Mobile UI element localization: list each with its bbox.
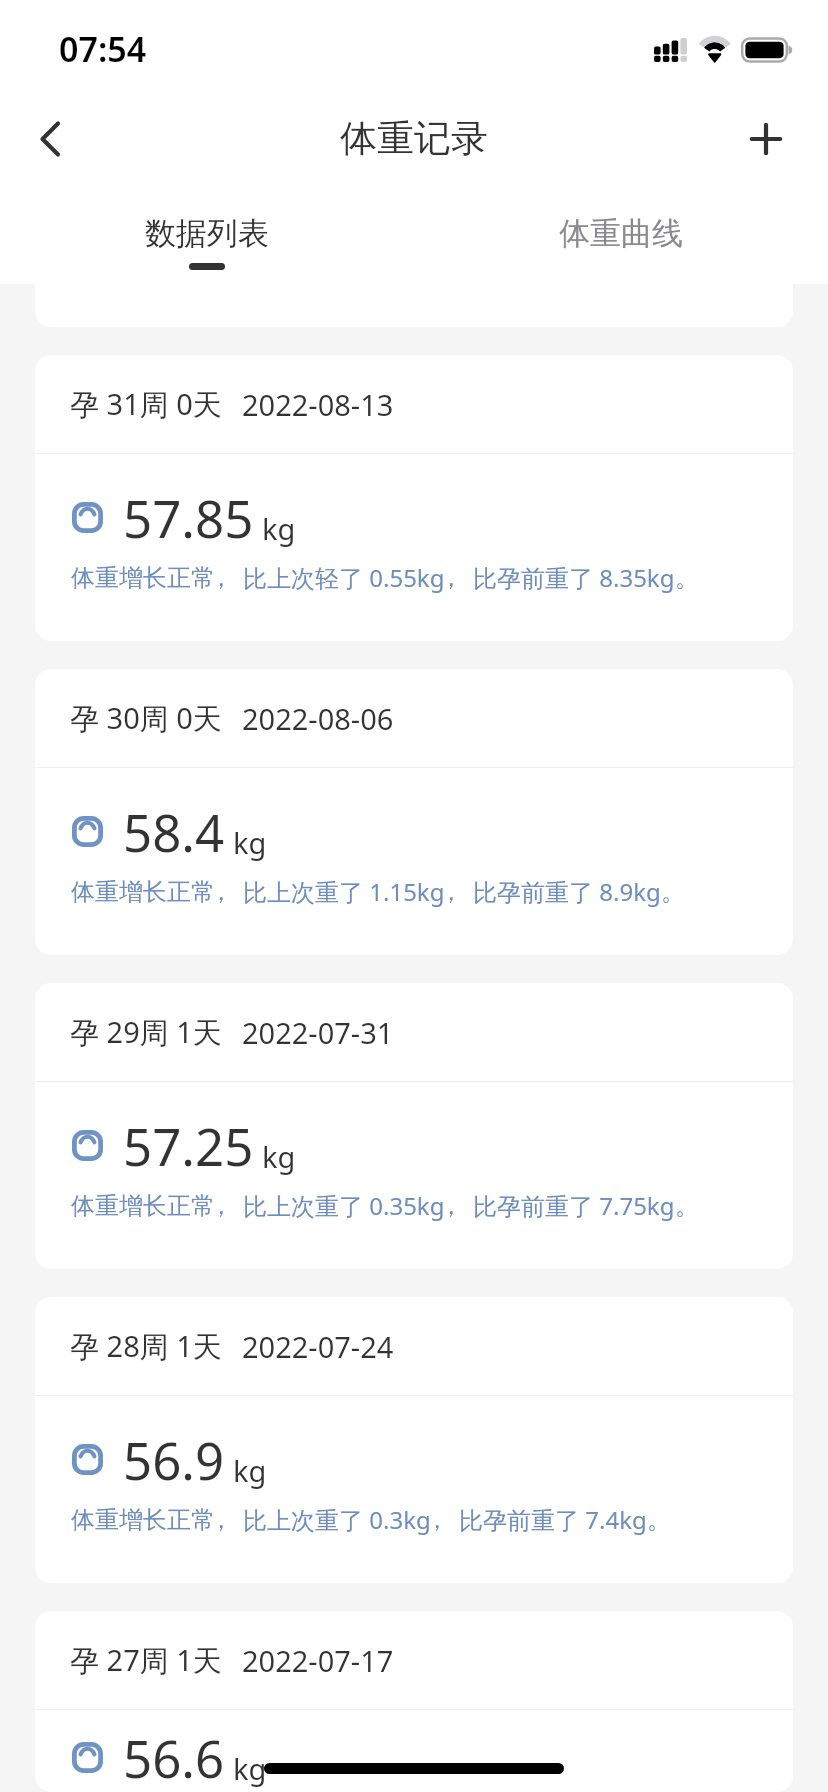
staticText: ，	[425, 1505, 449, 1535]
staticText: 56.9	[123, 1425, 225, 1494]
staticText: 07:54	[59, 26, 147, 72]
staticText: 。	[647, 1505, 671, 1535]
staticText: 体重增长正常	[71, 1191, 215, 1221]
button[interactable]: 孕 27周 1天	[35, 1611, 793, 1792]
staticText: 比上次重了 1.15kg	[243, 875, 445, 908]
staticText: 2022-07-17	[242, 1641, 394, 1680]
staticText: 体重增长正常	[71, 877, 215, 907]
staticText: 体重记录	[340, 115, 488, 162]
staticText: ，	[209, 877, 233, 907]
staticText: 。	[661, 877, 685, 907]
button[interactable]: 体重曲线	[414, 190, 828, 284]
staticText: 57.25	[123, 1111, 254, 1180]
staticText: 比上次轻了 0.55kg	[243, 561, 445, 594]
button[interactable]: 孕 29周 1天	[35, 983, 793, 1269]
staticText: 2022-08-06	[242, 699, 394, 738]
staticText: kg	[233, 823, 267, 862]
staticText: kg	[233, 1451, 267, 1490]
staticText: 2022-07-24	[242, 1327, 394, 1366]
staticText: 体重增长正常	[71, 563, 215, 593]
staticText: kg	[262, 1137, 296, 1176]
staticText: 孕 28周 1天	[70, 1326, 222, 1366]
staticText: ，	[439, 563, 463, 593]
staticText: 孕 30周 0天	[70, 698, 222, 738]
staticText: 比上次重了 0.35kg	[243, 1189, 445, 1222]
staticText: ，	[209, 1191, 233, 1221]
staticText: 比孕前重了 8.35kg	[473, 561, 675, 594]
staticText: 比孕前重了 7.75kg	[473, 1189, 675, 1222]
button[interactable]: 数据列表	[0, 190, 414, 284]
staticText: 体重增长正常	[71, 1505, 215, 1535]
staticText: 体重曲线	[559, 214, 683, 253]
staticText: ，	[209, 563, 233, 593]
button[interactable]: Add weight record	[726, 99, 806, 179]
button[interactable]: 孕 30周 0天	[35, 669, 793, 955]
staticText: 57.85	[123, 483, 254, 552]
staticText: 孕 27周 1天	[70, 1640, 222, 1680]
staticText: 2022-07-31	[242, 1013, 394, 1052]
staticText: 孕 31周 0天	[70, 384, 222, 424]
staticText: 56.6	[123, 1723, 225, 1792]
staticText: 孕 29周 1天	[70, 1012, 222, 1052]
button[interactable]: Back	[11, 99, 91, 179]
staticText: 比上次重了 0.3kg	[243, 1503, 431, 1536]
staticText: ，	[439, 877, 463, 907]
staticText: 58.4	[123, 797, 225, 866]
staticText: 2022-08-13	[242, 385, 394, 424]
button[interactable]: 孕 28周 1天	[35, 1297, 793, 1583]
staticText: ，	[209, 1505, 233, 1535]
staticText: 。	[675, 1191, 699, 1221]
staticText: 数据列表	[145, 214, 269, 253]
staticText: ，	[439, 1191, 463, 1221]
staticText: kg	[233, 1749, 267, 1788]
staticText: kg	[262, 509, 296, 548]
staticText: 。	[675, 563, 699, 593]
staticText: 比孕前重了 7.4kg	[459, 1503, 647, 1536]
staticText: 比孕前重了 8.9kg	[473, 875, 661, 908]
button[interactable]: 孕 31周 0天	[35, 355, 793, 641]
